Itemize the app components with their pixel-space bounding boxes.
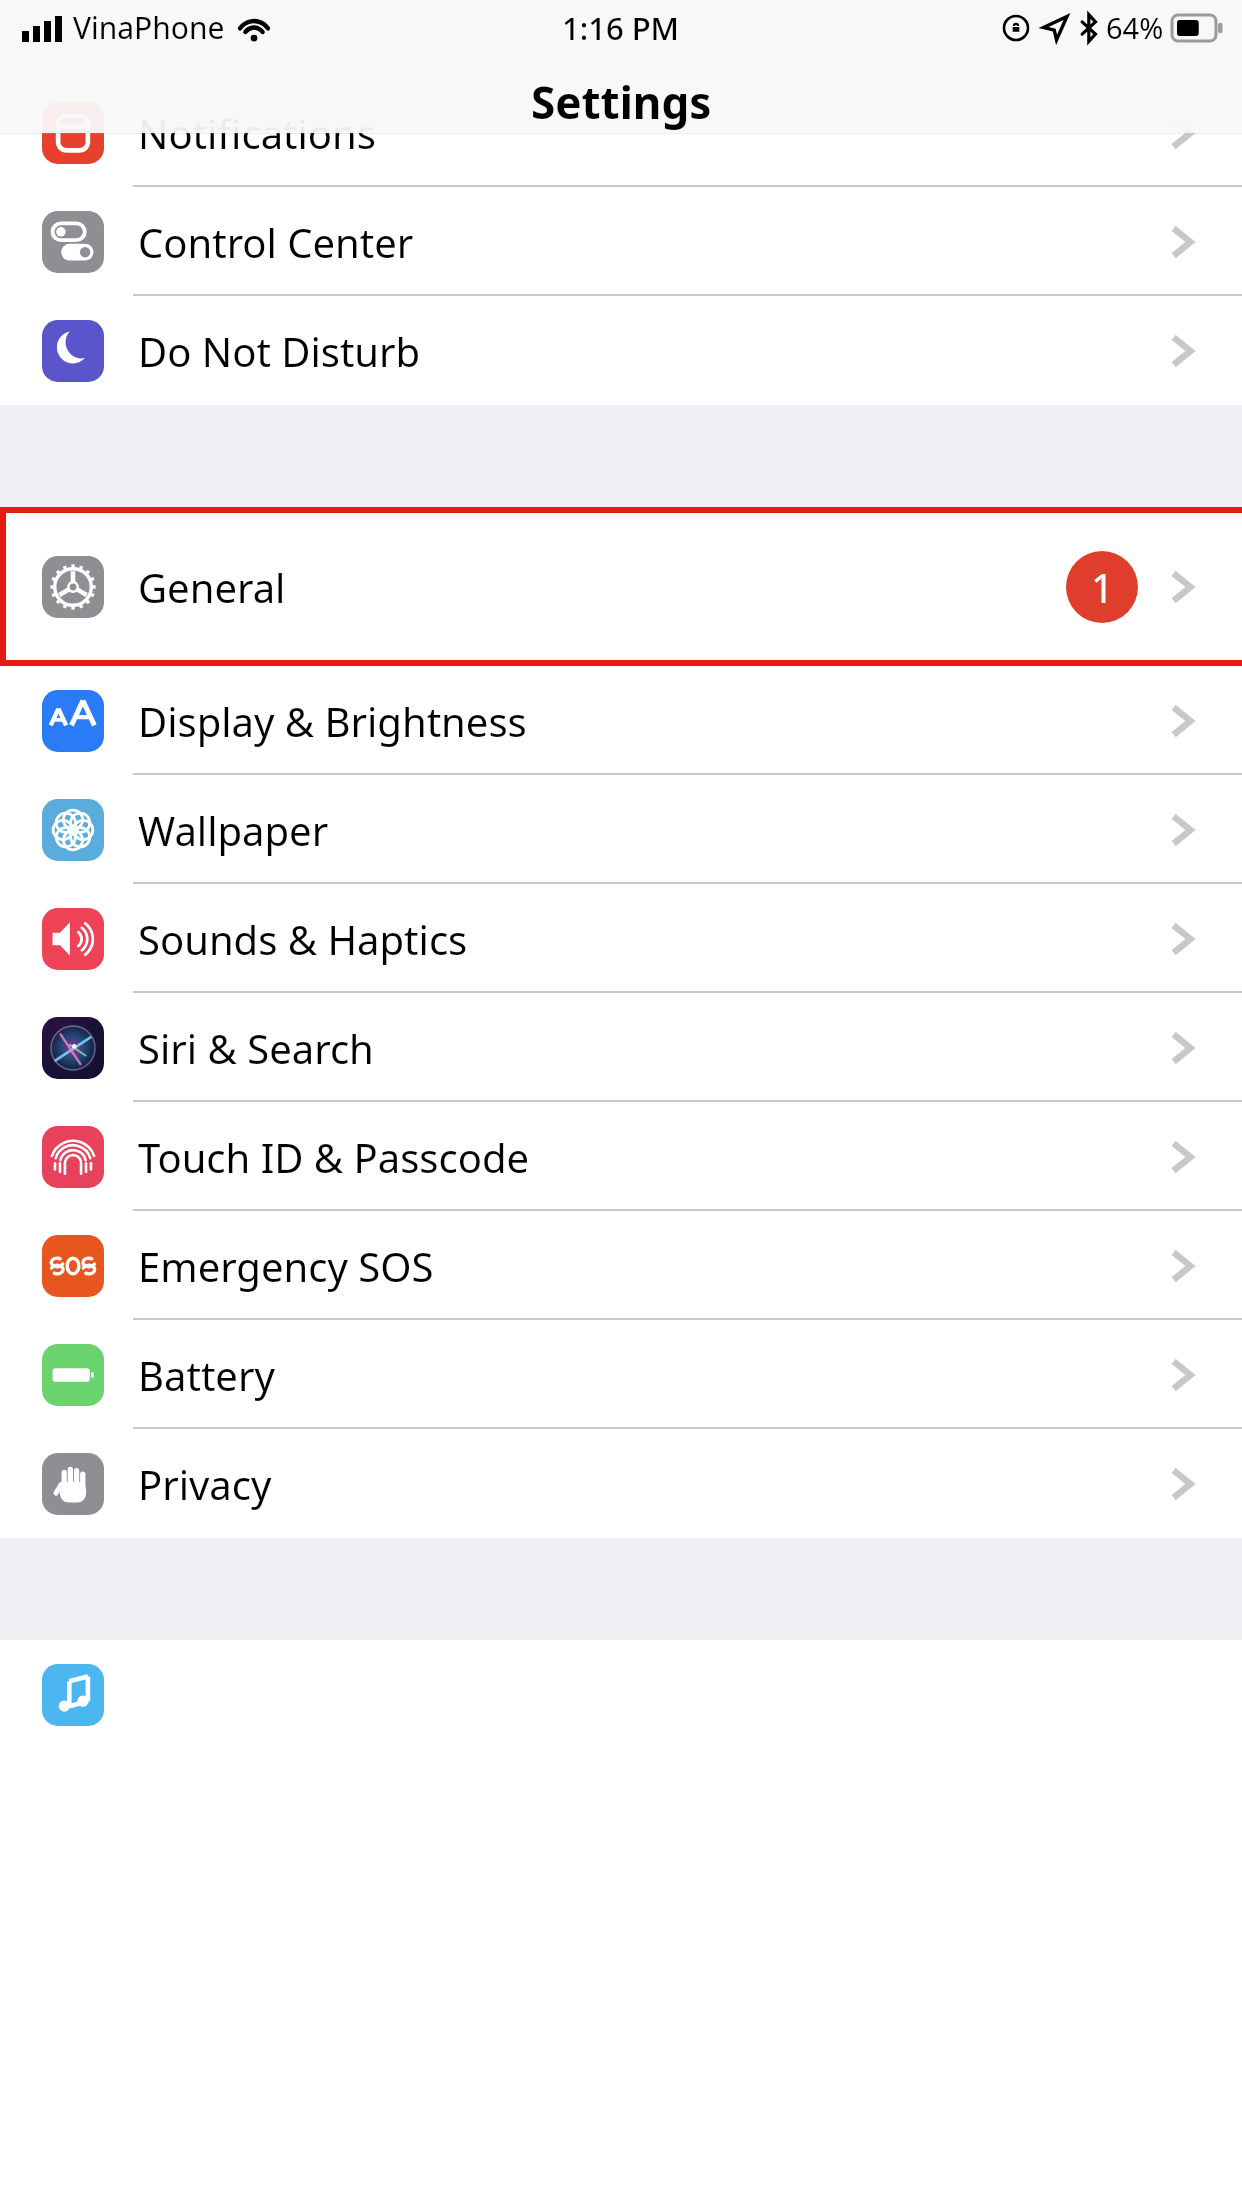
- button[interactable]: Control Center: [0, 187, 1242, 296]
- staticText: Siri & Search: [138, 1021, 374, 1075]
- button[interactable]: Siri & Search: [0, 993, 1242, 1102]
- staticText: Display & Brightness: [138, 694, 527, 748]
- button[interactable]: General: [6, 513, 1242, 660]
- staticText: 1:16 PM: [562, 7, 680, 49]
- staticText: Settings: [531, 72, 712, 132]
- staticText: Notifications: [138, 106, 376, 160]
- button[interactable]: Battery: [0, 1320, 1242, 1429]
- staticText: Battery: [138, 1348, 275, 1402]
- staticText: Privacy: [138, 1457, 272, 1511]
- staticText: Emergency SOS: [138, 1239, 434, 1293]
- button[interactable]: Do Not Disturb: [0, 296, 1242, 405]
- button[interactable]: Emergency SOS: [0, 1211, 1242, 1320]
- staticText: VinaPhone: [73, 7, 225, 48]
- button[interactable]: Wallpaper: [0, 775, 1242, 884]
- staticText: 64%: [1106, 8, 1164, 47]
- button[interactable]: Privacy: [0, 1429, 1242, 1538]
- staticText: Touch ID & Passcode: [138, 1130, 530, 1184]
- button[interactable]: Sounds & Haptics: [0, 884, 1242, 993]
- button[interactable]: [0, 1640, 1242, 1749]
- button[interactable]: Display & Brightness: [0, 666, 1242, 775]
- staticText: Control Center: [138, 215, 414, 269]
- staticText: Sounds & Haptics: [138, 912, 468, 966]
- staticText: General: [138, 560, 286, 614]
- button[interactable]: Touch ID & Passcode: [0, 1102, 1242, 1211]
- button[interactable]: Notifications: [0, 78, 1242, 187]
- staticText: Wallpaper: [138, 803, 329, 857]
- staticText: Do Not Disturb: [138, 324, 421, 378]
- staticText: 1: [1091, 560, 1114, 614]
